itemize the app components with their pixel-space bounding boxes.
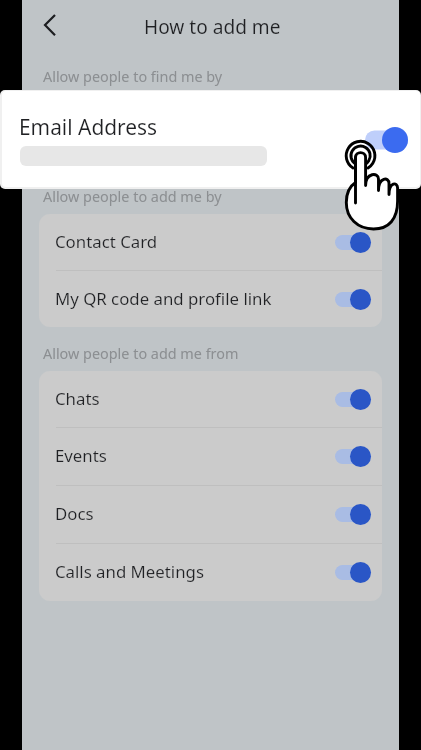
staticText: Events — [55, 444, 107, 467]
staticText: Allow people to add me from — [43, 344, 239, 364]
button[interactable]: Docs — [39, 486, 382, 543]
button[interactable]: Chats — [39, 371, 382, 427]
staticText: Calls and Meetings — [55, 560, 204, 583]
staticText: Allow people to find me by — [43, 67, 223, 87]
button[interactable]: Phone Number — [39, 151, 365, 186]
staticText: Chats — [55, 387, 100, 410]
button[interactable]: Email Address — [2, 91, 420, 187]
button[interactable]: Contact Card — [39, 214, 382, 270]
staticText: Email Address — [55, 110, 167, 133]
button[interactable]: Events — [39, 428, 382, 485]
staticText: Email Address — [19, 113, 158, 141]
button[interactable]: My QR code and profile link — [39, 271, 382, 327]
staticText: Allow people to add me by — [43, 187, 222, 207]
staticText: Phone Number — [55, 156, 176, 179]
staticText: My QR code and profile link — [55, 287, 272, 310]
staticText: Docs — [55, 502, 94, 525]
button[interactable]: Calls and Meetings — [39, 544, 382, 601]
staticText: Contact Card — [55, 230, 158, 253]
button[interactable]: Email Address — [39, 94, 365, 150]
button[interactable]: Back — [30, 5, 70, 45]
staticText: How to add me — [144, 14, 281, 40]
